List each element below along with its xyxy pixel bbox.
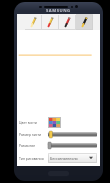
button[interactable]: Brush — [42, 14, 59, 30]
staticText: Размер кисти — [19, 132, 42, 137]
button[interactable]: Бессознательно — [48, 153, 97, 163]
staticText: Тип рисования — [19, 156, 44, 161]
staticText: Цвет кисти — [19, 120, 37, 125]
staticText: Размытие — [19, 143, 36, 148]
button[interactable]: Размытие — [19, 140, 98, 151]
button[interactable]: Цвет кисти — [19, 115, 98, 129]
button[interactable]: Pen — [76, 14, 93, 30]
button[interactable]: Marker — [59, 14, 76, 30]
button[interactable]: Home — [47, 170, 70, 177]
button[interactable]: Размер кисти — [19, 129, 98, 140]
button[interactable]: Pencil — [25, 14, 42, 30]
staticText: SAMSUNG — [46, 8, 71, 14]
staticText: Бессознательно — [50, 156, 78, 161]
